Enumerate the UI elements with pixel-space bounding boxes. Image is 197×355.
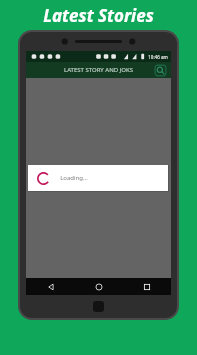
staticText: Latest Stories [43, 4, 154, 27]
staticText: LATEST STORY AND JOKS [64, 66, 133, 74]
button[interactable]: Home button [93, 301, 104, 312]
button[interactable]: Home [75, 278, 123, 295]
staticText: Loading... [60, 174, 88, 182]
button[interactable]: Recent apps [123, 278, 171, 295]
button[interactable]: Search [154, 64, 167, 77]
button[interactable]: Back [26, 278, 75, 295]
staticText: 10:46 am [148, 54, 168, 60]
button[interactable]: Loading... [28, 165, 168, 191]
